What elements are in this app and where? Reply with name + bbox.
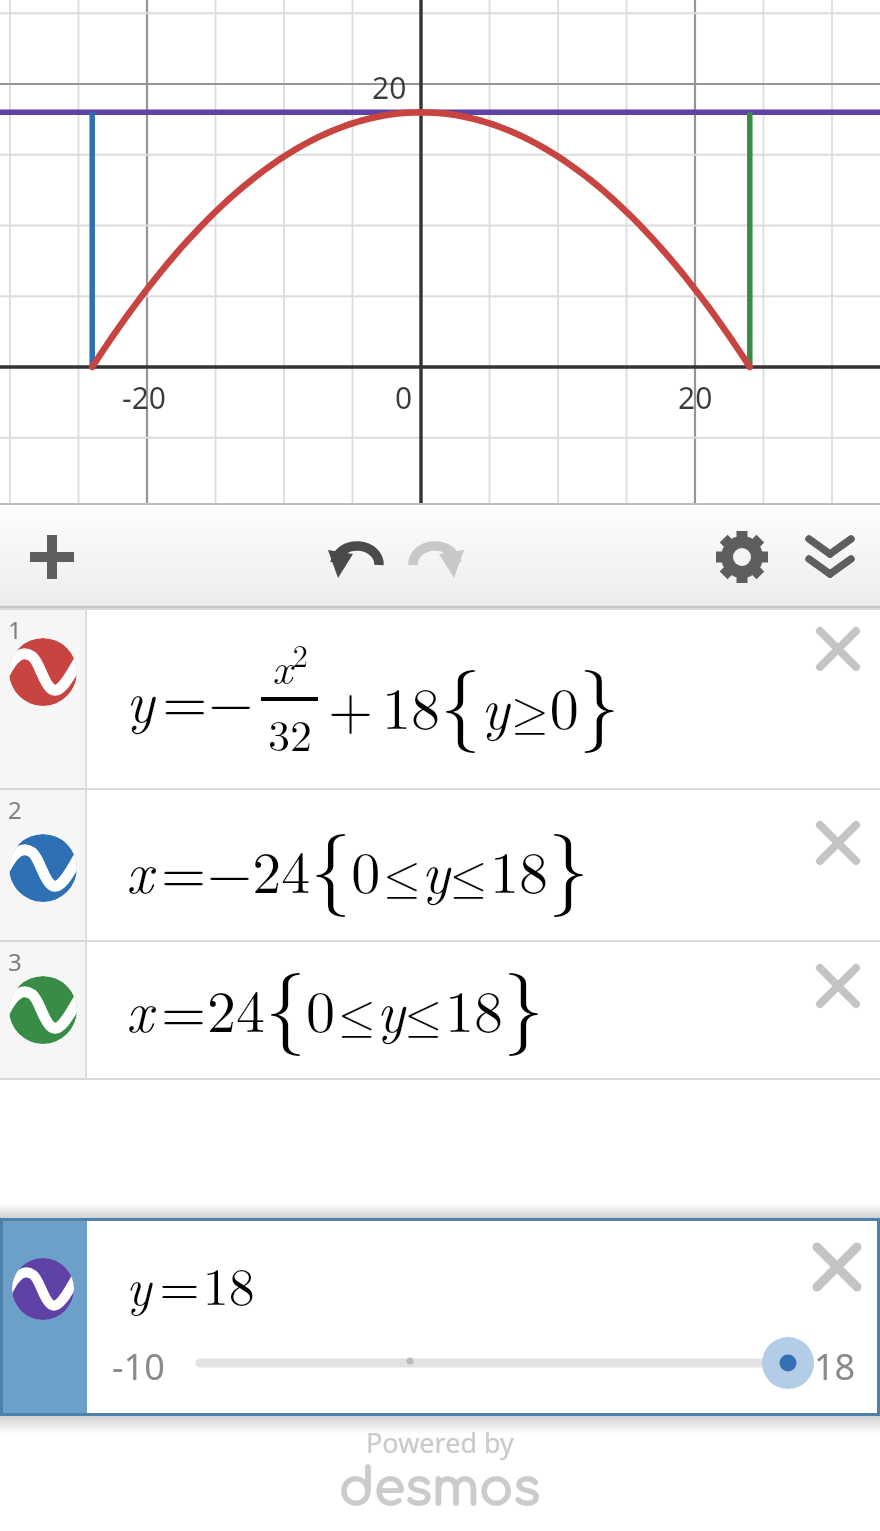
staticText: + 18{y ≥ 0}: [328, 640, 620, 756]
staticText: x = −24{0 ≤ y≤ 18}: [126, 804, 590, 920]
button[interactable]: [22, 529, 82, 585]
staticText: x = 24{0 ≤ y≤ 18}: [126, 943, 544, 1059]
button[interactable]: 3: [0, 940, 880, 1080]
staticText: -10: [112, 1342, 165, 1391]
staticText: 0: [395, 377, 413, 418]
staticText: 3: [8, 945, 22, 978]
staticText: 32: [268, 701, 312, 763]
staticText: -20: [122, 377, 166, 418]
staticText: 20: [678, 377, 713, 418]
staticText: y = −: [126, 657, 254, 739]
button[interactable]: [808, 813, 868, 873]
staticText: 20: [372, 67, 407, 108]
staticText: desmos: [339, 1461, 541, 1517]
button[interactable]: [324, 527, 386, 587]
staticText: Powered by: [366, 1424, 514, 1461]
staticText: x2: [272, 632, 308, 697]
button[interactable]: y = 18: [0, 1218, 880, 1416]
staticText: 2: [8, 793, 22, 826]
button[interactable]: [807, 1237, 867, 1297]
button[interactable]: [808, 956, 868, 1016]
button[interactable]: [808, 619, 868, 679]
button[interactable]: 2: [0, 788, 880, 940]
button[interactable]: [712, 529, 772, 585]
staticText: 18: [814, 1342, 856, 1391]
button[interactable]: [180, 1337, 820, 1389]
staticText: y = 18: [126, 1246, 255, 1320]
button[interactable]: [798, 529, 862, 585]
button[interactable]: [406, 527, 468, 587]
button[interactable]: 1: [0, 608, 880, 788]
staticText: 1: [8, 613, 22, 646]
